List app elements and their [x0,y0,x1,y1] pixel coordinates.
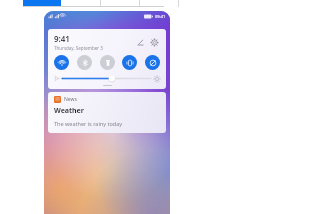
button[interactable]: Settings [148,36,160,48]
button[interactable]: Edit [134,36,146,48]
button[interactable] [101,0,139,7]
staticText: 09:41 [155,14,166,19]
button[interactable] [140,0,178,7]
button[interactable]: Bluetooth [77,55,92,70]
button[interactable]: News [48,92,166,133]
button[interactable]: 9:41 [48,29,166,89]
staticText: Thursday, September 3 [54,45,103,51]
staticText: 9:41 [54,33,70,44]
staticText: The weather is rainy today [54,120,123,127]
staticText: Weather [54,106,84,116]
button[interactable] [62,0,100,7]
button[interactable]: Flashlight [100,55,115,70]
button[interactable]: Brightness [62,74,151,83]
staticText: News [64,96,77,103]
button[interactable]: Do not disturb [145,55,160,70]
button[interactable]: Vibrate [122,55,137,70]
button[interactable]: Wi-Fi [54,55,69,70]
button[interactable] [23,0,61,7]
